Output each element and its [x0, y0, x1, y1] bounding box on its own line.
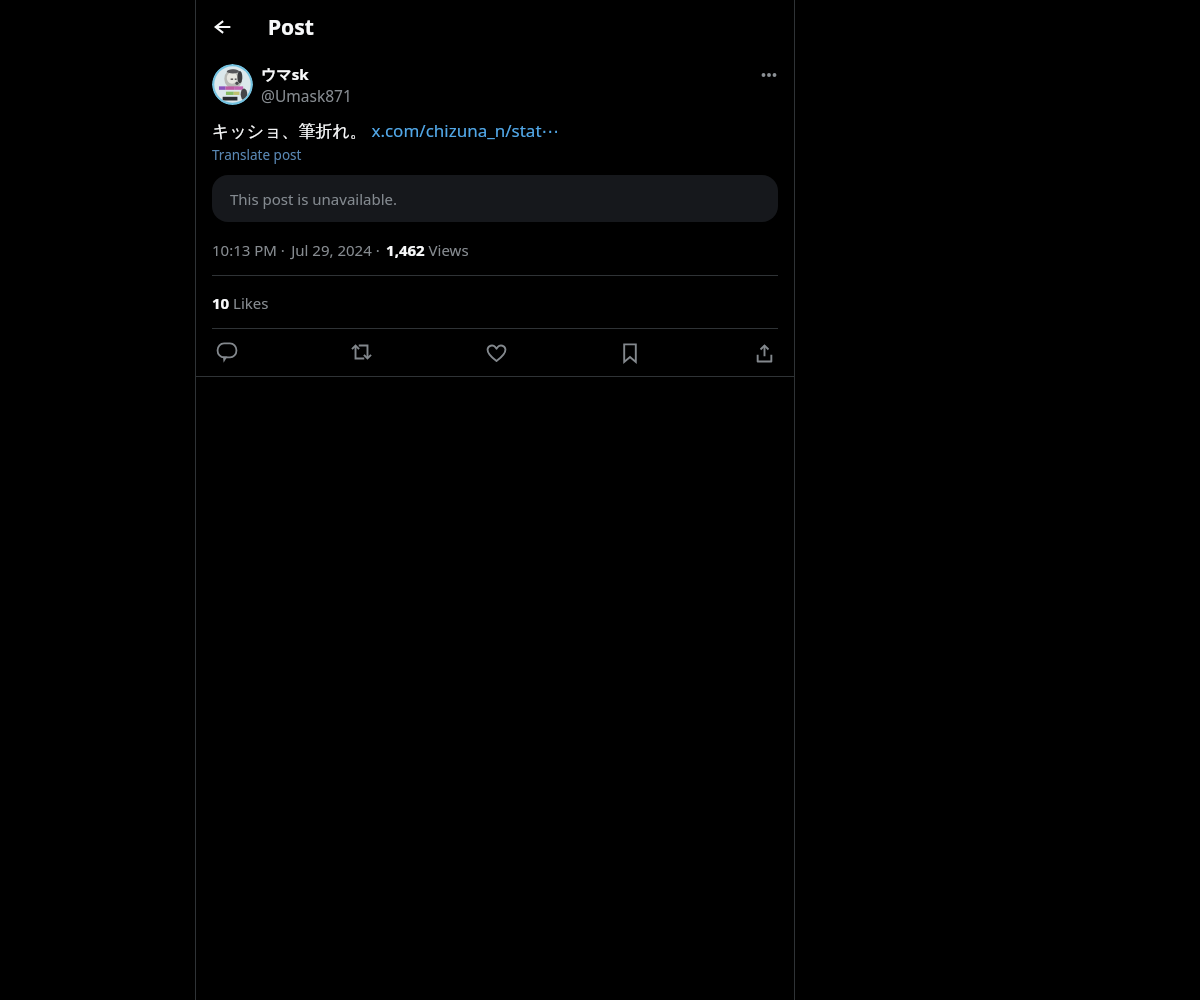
staticText: キッショ、筆折れ。 x.com/chizuna_n/stat⋯: [212, 119, 559, 142]
button[interactable]: Translate post: [212, 146, 302, 164]
staticText: 10:13 PM · Jul 29, 2024 · 1,462 Views: [212, 240, 469, 260]
staticText: @Umask871: [261, 85, 352, 106]
button[interactable]: More: [747, 53, 791, 97]
button[interactable]: This post is unavailable.: [212, 175, 778, 222]
button[interactable]: Back: [203, 7, 243, 47]
button[interactable]: Bookmark: [612, 335, 648, 371]
button[interactable]: Reply: [209, 335, 245, 371]
staticText: 10 Likes: [212, 293, 269, 313]
button[interactable]: Profile photo: [212, 64, 253, 105]
staticText: ウマsk: [261, 64, 309, 84]
staticText: Post: [268, 13, 314, 42]
button[interactable]: Like: [478, 334, 514, 370]
button[interactable]: Share: [746, 335, 782, 371]
button[interactable]: Repost: [343, 334, 379, 370]
staticText: Translate post: [212, 146, 302, 164]
staticText: This post is unavailable.: [230, 189, 398, 209]
